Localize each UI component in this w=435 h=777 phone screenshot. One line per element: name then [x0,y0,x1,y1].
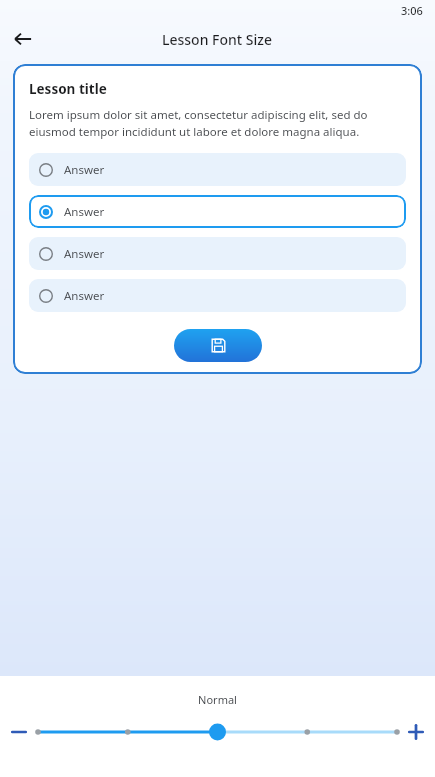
staticText: Lorem ipsum dolor sit amet, consectetur … [29,107,406,139]
staticText: Lesson title [29,80,107,98]
button[interactable]: Answer [29,195,406,228]
staticText: Answer [64,162,105,178]
button[interactable]: Answer [29,237,406,270]
staticText: Answer [64,288,105,304]
button[interactable]: Increase font size [397,715,435,749]
button[interactable]: Save [174,329,262,362]
staticText: Answer [64,204,105,220]
button[interactable]: Decrease font size [0,715,38,749]
staticText: Answer [64,246,105,262]
staticText: 3:06 [401,3,423,18]
staticText: Lesson Font Size [162,30,273,49]
button[interactable]: Answer [29,153,406,186]
button[interactable]: Back [6,22,40,56]
staticText: Normal [198,692,237,707]
button[interactable]: Font size slider [38,715,397,749]
button[interactable]: Answer [29,279,406,312]
